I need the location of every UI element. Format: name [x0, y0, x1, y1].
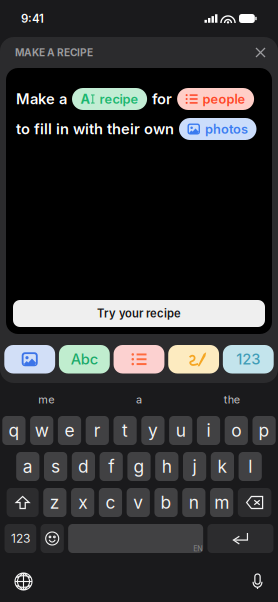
- staticText: t: [122, 420, 128, 441]
- button[interactable]: h: [155, 452, 178, 481]
- button[interactable]: u: [169, 416, 192, 445]
- button[interactable]: i: [197, 416, 220, 445]
- button[interactable]: [238, 488, 271, 517]
- button[interactable]: w: [30, 416, 53, 445]
- staticText: A: [80, 91, 90, 107]
- staticText: c: [105, 492, 115, 513]
- staticText: z: [50, 492, 60, 513]
- button[interactable]: c: [99, 488, 122, 517]
- button[interactable]: d: [72, 452, 95, 481]
- button[interactable]: Try your recipe: [13, 300, 265, 327]
- staticText: a: [136, 393, 142, 406]
- button[interactable]: z: [43, 488, 66, 517]
- button[interactable]: v: [127, 488, 150, 517]
- staticText: g: [133, 456, 144, 477]
- button[interactable]: j: [183, 452, 206, 481]
- button[interactable]: x: [71, 488, 94, 517]
- button[interactable]: g: [127, 452, 151, 481]
- button[interactable]: p: [252, 416, 276, 445]
- staticText: o: [231, 420, 241, 441]
- staticText: e: [64, 420, 74, 441]
- staticText: Abc: [71, 350, 98, 368]
- button[interactable]: 123: [4, 524, 36, 553]
- staticText: Try your recipe: [97, 307, 181, 320]
- staticText: u: [176, 420, 186, 441]
- staticText: b: [161, 492, 172, 513]
- staticText: a: [23, 456, 33, 477]
- staticText: MAKE A RECIPE: [15, 46, 93, 59]
- staticText: s: [51, 456, 60, 477]
- staticText: f: [108, 456, 114, 477]
- button[interactable]: 123: [223, 345, 274, 373]
- staticText: 123: [236, 350, 260, 368]
- button[interactable]: m: [210, 488, 233, 517]
- button[interactable]: q: [2, 416, 25, 445]
- button[interactable]: Dictate: [246, 568, 269, 595]
- staticText: d: [78, 456, 89, 477]
- button[interactable]: [40, 524, 64, 553]
- staticText: n: [189, 492, 199, 513]
- staticText: w: [35, 420, 49, 441]
- staticText: h: [162, 456, 172, 477]
- staticText: k: [217, 456, 227, 477]
- staticText: v: [133, 492, 143, 513]
- staticText: EN: [193, 544, 203, 553]
- button[interactable]: k: [211, 452, 234, 481]
- staticText: i: [206, 420, 210, 441]
- staticText: r: [94, 420, 101, 441]
- button[interactable]: [7, 488, 39, 517]
- staticText: p: [259, 420, 270, 441]
- staticText: for: [152, 90, 172, 108]
- staticText: people: [203, 91, 246, 107]
- button[interactable]: n: [182, 488, 205, 517]
- staticText: j: [193, 456, 197, 477]
- staticText: to fill in with their own: [16, 120, 174, 138]
- staticText: q: [8, 420, 19, 441]
- button[interactable]: Abc: [59, 345, 110, 373]
- button[interactable]: t: [113, 416, 137, 445]
- staticText: m: [214, 492, 229, 513]
- button[interactable]: EN: [68, 524, 203, 553]
- button[interactable]: r: [86, 416, 109, 445]
- button[interactable]: b: [154, 488, 178, 517]
- button[interactable]: f: [100, 452, 123, 481]
- button[interactable]: l: [239, 452, 262, 481]
- button[interactable]: y: [141, 416, 164, 445]
- staticText: y: [148, 420, 158, 441]
- staticText: recipe: [100, 91, 139, 107]
- button[interactable]: e: [58, 416, 81, 445]
- staticText: l: [248, 456, 252, 477]
- staticText: 123: [11, 531, 30, 546]
- staticText: Make a: [16, 90, 67, 108]
- staticText: me: [38, 393, 54, 406]
- staticText: the: [224, 393, 240, 406]
- button[interactable]: Close: [249, 41, 272, 64]
- button[interactable]: [207, 524, 273, 553]
- button[interactable]: s: [44, 452, 67, 481]
- staticText: x: [78, 492, 87, 513]
- button[interactable]: a: [16, 452, 39, 481]
- button[interactable]: [4, 345, 55, 373]
- button[interactable]: o: [225, 416, 248, 445]
- staticText: photos: [205, 121, 248, 137]
- button[interactable]: [168, 345, 219, 373]
- button[interactable]: Change keyboard: [9, 567, 38, 596]
- button[interactable]: [114, 345, 164, 373]
- staticText: 9:41: [21, 12, 44, 25]
